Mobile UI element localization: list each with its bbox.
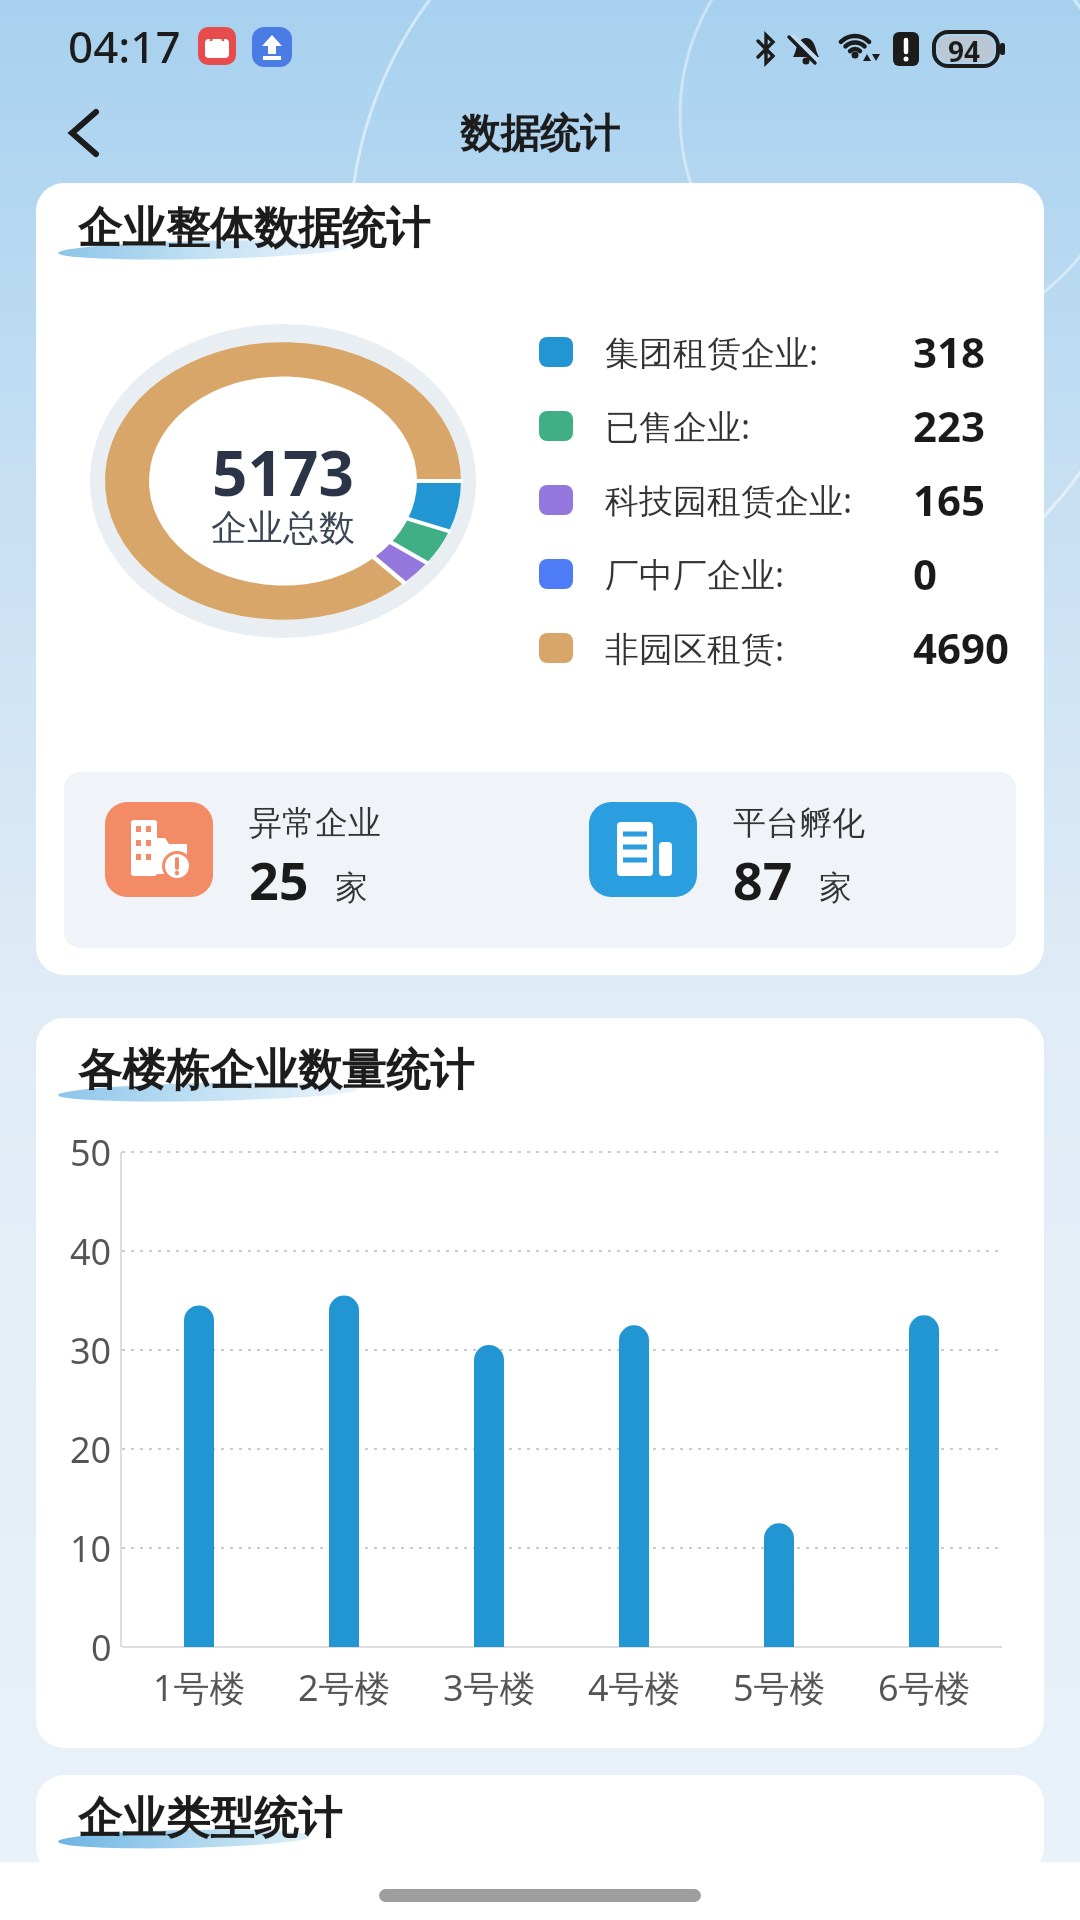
- button[interactable]: 厂中厂企业:: [539, 545, 1029, 602]
- staticText: 已售企业:: [605, 403, 913, 449]
- button[interactable]: 平台孵化: [589, 802, 969, 918]
- staticText: 04:17: [68, 16, 181, 76]
- staticText: 0: [913, 545, 938, 602]
- staticText: 异常企业: [249, 802, 381, 844]
- staticText: 94: [948, 32, 981, 70]
- staticText: 50: [70, 1128, 112, 1177]
- staticText: 科技园租赁企业:: [605, 477, 913, 523]
- staticText: 企业类型统计: [78, 1791, 342, 1846]
- button[interactable]: 科技园租赁企业:: [539, 471, 1029, 528]
- button[interactable]: 非园区租赁:: [539, 619, 1029, 676]
- staticText: 企业整体数据统计: [78, 201, 430, 256]
- staticText: 2号楼: [298, 1663, 391, 1712]
- staticText: 数据统计: [460, 108, 620, 158]
- staticText: 家: [335, 867, 368, 909]
- button[interactable]: 异常企业: [105, 802, 485, 918]
- staticText: 87: [733, 844, 793, 915]
- staticText: 5号楼: [733, 1663, 826, 1712]
- staticText: 10: [70, 1524, 112, 1573]
- button[interactable]: 已售企业:: [539, 397, 1029, 454]
- button[interactable]: 集团租赁企业:: [539, 323, 1029, 380]
- button[interactable]: [62, 110, 106, 156]
- staticText: 4号楼: [588, 1663, 681, 1712]
- staticText: 223: [913, 397, 986, 454]
- staticText: 1号楼: [153, 1663, 246, 1712]
- staticText: 6号楼: [878, 1663, 971, 1712]
- staticText: 30: [70, 1326, 112, 1375]
- staticText: 非园区租赁:: [605, 625, 913, 671]
- staticText: 5173: [212, 430, 354, 514]
- staticText: 40: [70, 1227, 112, 1276]
- staticText: 4690: [913, 619, 1010, 676]
- staticText: 318: [913, 323, 986, 380]
- staticText: 20: [70, 1425, 112, 1474]
- staticText: 集团租赁企业:: [605, 329, 913, 375]
- staticText: 3号楼: [443, 1663, 536, 1712]
- staticText: 165: [913, 471, 986, 528]
- staticText: 平台孵化: [733, 802, 865, 844]
- staticText: 厂中厂企业:: [605, 551, 913, 597]
- staticText: 各楼栋企业数量统计: [78, 1043, 474, 1098]
- staticText: 企业总数: [211, 505, 355, 550]
- staticText: 25: [249, 844, 309, 915]
- staticText: 0: [91, 1623, 112, 1672]
- staticText: 家: [819, 867, 852, 909]
